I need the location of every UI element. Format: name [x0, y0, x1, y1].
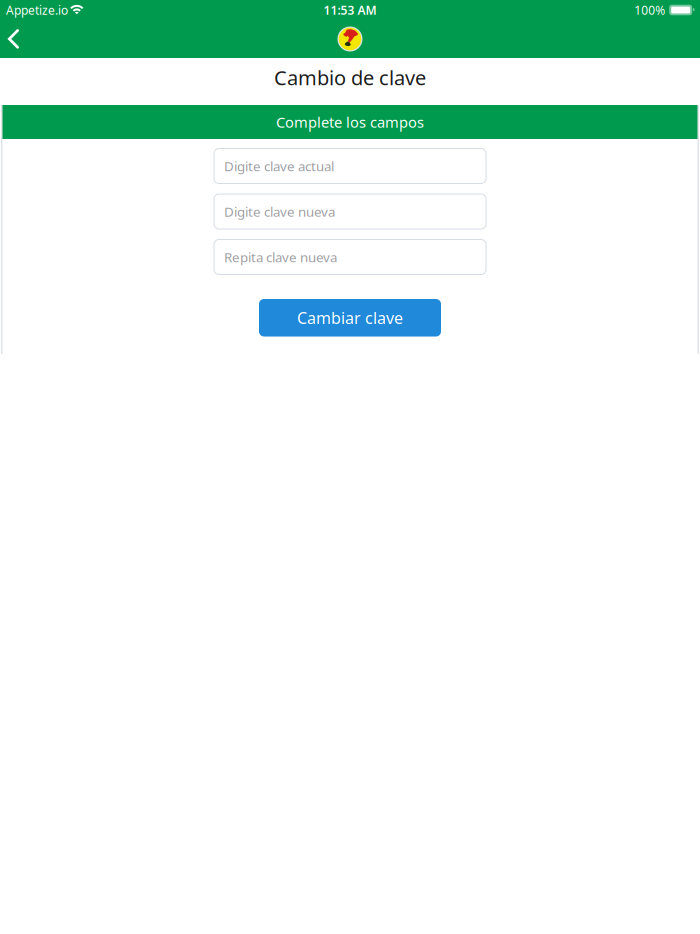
staticText: Digite clave nueva	[224, 203, 335, 220]
staticText: Appetize.io	[6, 2, 68, 18]
staticText: Repita clave nueva	[224, 248, 337, 266]
staticText: Cambiar clave	[297, 307, 403, 328]
button[interactable]: Cambiar clave	[259, 299, 441, 336]
staticText: Digite clave actual	[224, 157, 334, 175]
staticText: Complete los campos	[276, 112, 424, 132]
button[interactable]: Repita clave nueva	[214, 239, 486, 274]
button[interactable]: Digite clave nueva	[214, 194, 486, 229]
button[interactable]: Back	[0, 20, 44, 58]
staticText: 11:53 AM	[323, 2, 376, 18]
staticText: Cambio de clave	[274, 64, 426, 91]
button[interactable]: Digite clave actual	[214, 148, 486, 183]
staticText: 100%	[634, 2, 665, 18]
